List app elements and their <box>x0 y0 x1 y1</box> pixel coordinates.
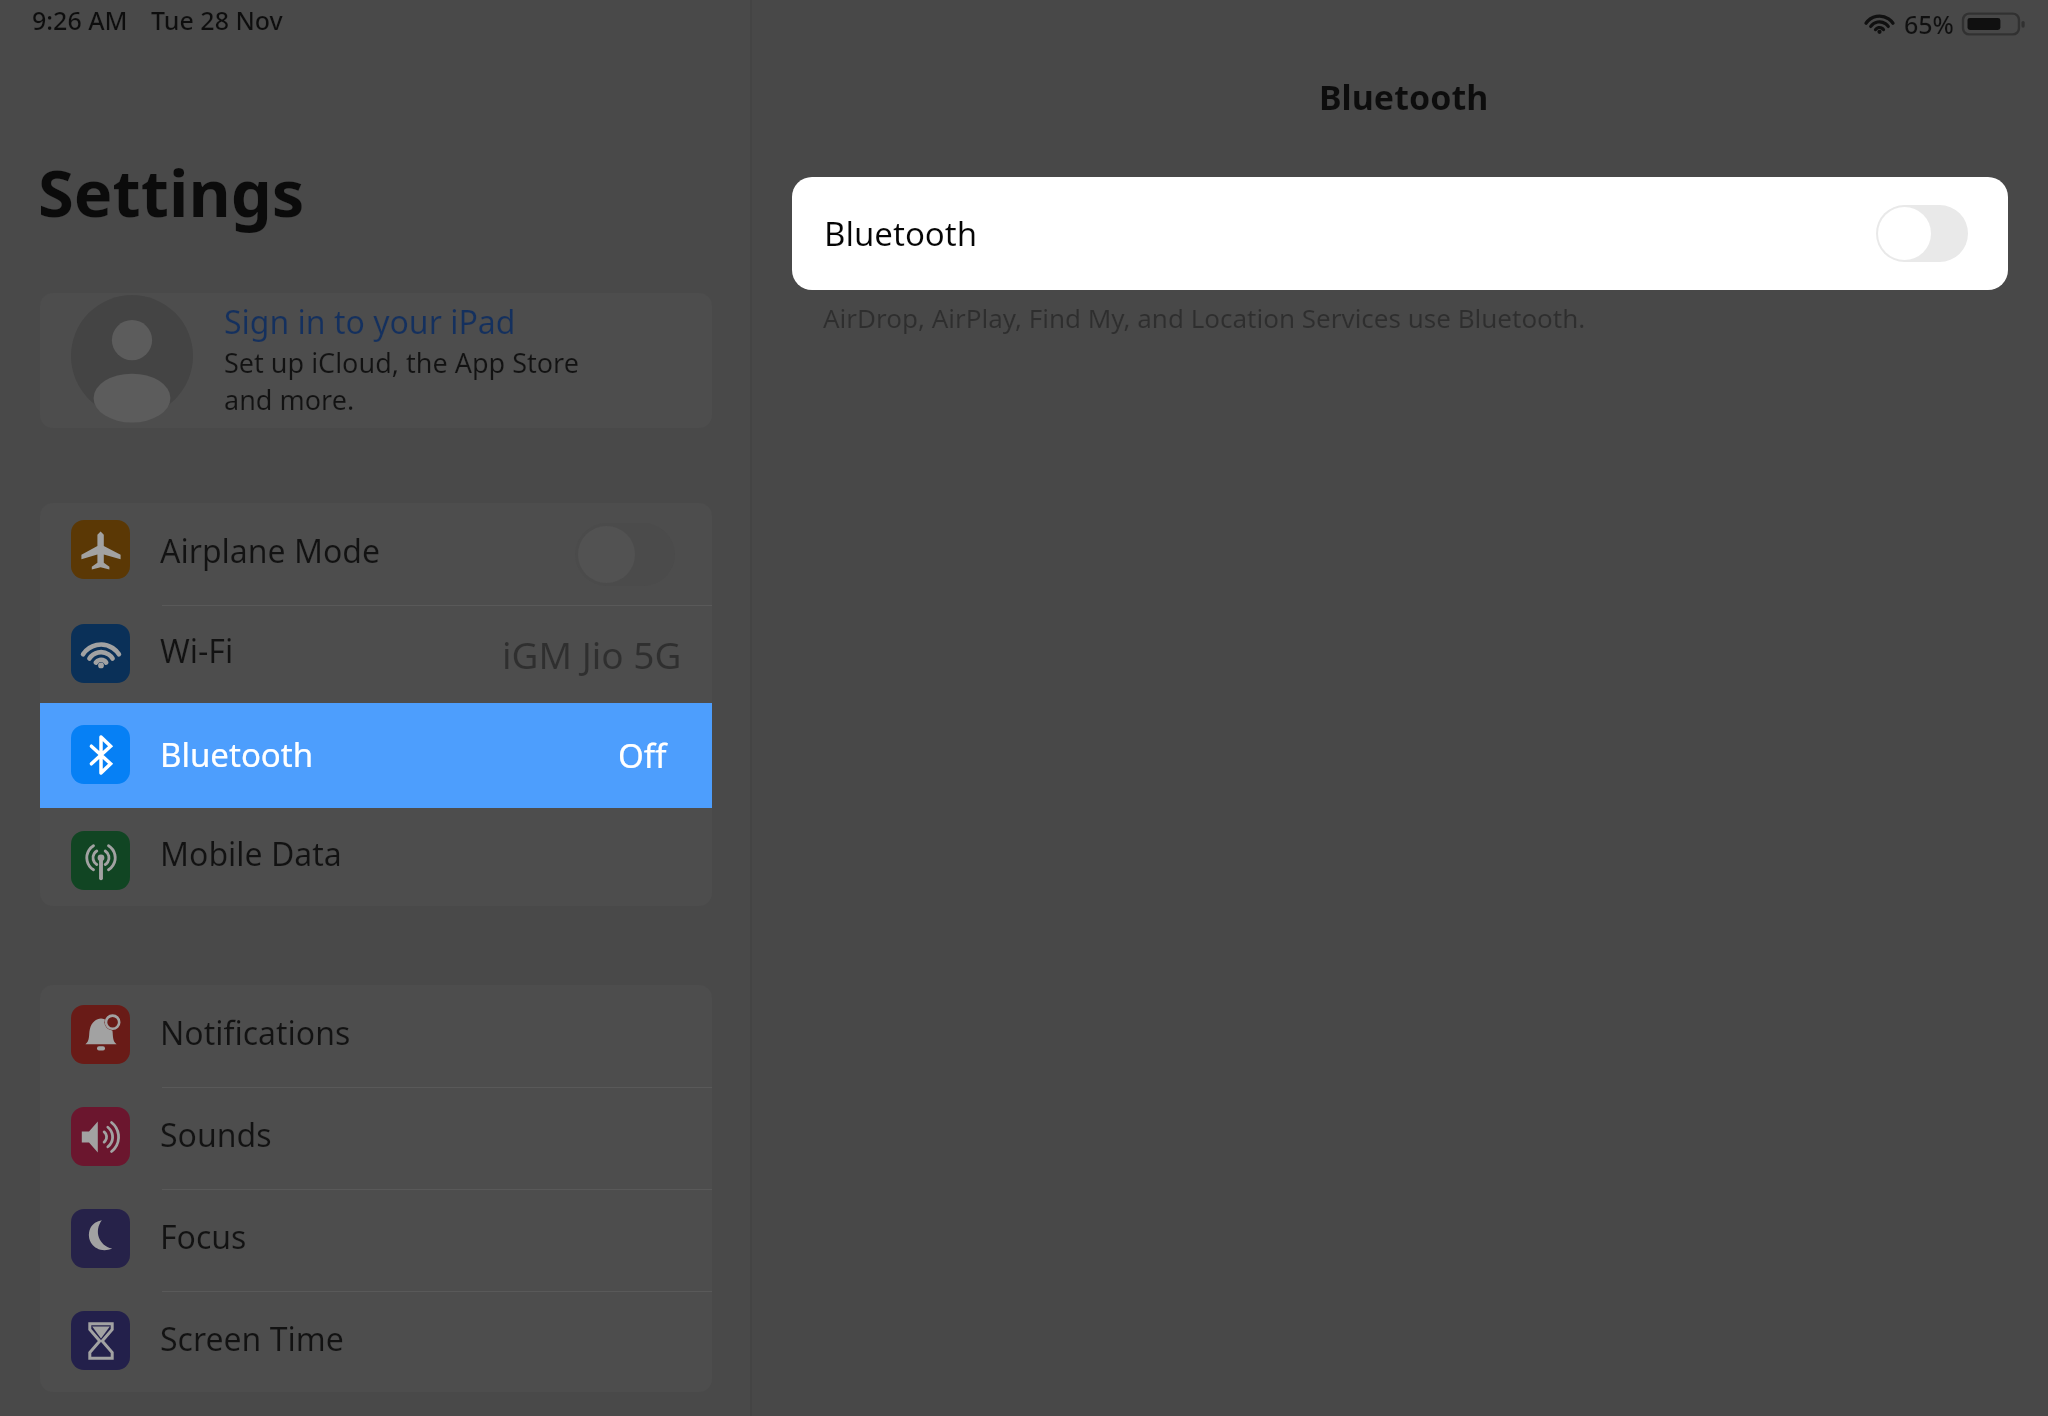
staticText: Bluetooth <box>160 732 314 777</box>
staticText: Settings <box>38 148 305 237</box>
staticText: Tue 28 Nov <box>151 3 283 37</box>
staticText: 65% <box>1904 7 1954 41</box>
button[interactable]: Notifications <box>40 985 712 1087</box>
staticText: Mobile Data <box>160 832 342 876</box>
other: Wi-Fi signal <box>1864 11 1895 37</box>
staticText: Set up iCloud, the App Store <box>224 344 579 381</box>
staticText: and more. <box>224 381 355 418</box>
staticText: Sign in to your iPad <box>224 300 516 344</box>
staticText: 9:26 AM <box>32 3 128 37</box>
staticText: iGM Jio 5G <box>502 629 682 679</box>
staticText: Airplane Mode <box>160 529 381 573</box>
button[interactable]: Sounds <box>40 1087 712 1189</box>
button[interactable]: Bluetooth <box>40 703 712 808</box>
button[interactable]: Bluetooth <box>792 177 2008 290</box>
button[interactable]: Bluetooth toggle <box>1876 205 1968 262</box>
button[interactable]: Screen Time <box>40 1291 712 1392</box>
staticText: Sounds <box>160 1113 272 1157</box>
staticText: Focus <box>160 1215 247 1259</box>
staticText: Bluetooth <box>1319 74 1489 120</box>
button[interactable]: Wi-Fi <box>40 605 712 703</box>
other: Battery 65 percent <box>1962 11 2024 37</box>
staticText: Bluetooth <box>824 211 978 256</box>
staticText: Screen Time <box>160 1317 344 1361</box>
button[interactable]: Airplane Mode toggle <box>575 523 675 586</box>
button[interactable]: Focus <box>40 1189 712 1291</box>
button[interactable]: Airplane Mode <box>40 503 712 605</box>
staticText: AirDrop, AirPlay, Find My, and Location … <box>823 300 1586 335</box>
staticText: Wi-Fi <box>160 629 234 673</box>
staticText: Off <box>618 733 667 778</box>
button[interactable]: Sign in to your iPad <box>40 293 712 428</box>
staticText: Notifications <box>160 1011 351 1055</box>
button[interactable]: Mobile Data <box>40 808 712 906</box>
